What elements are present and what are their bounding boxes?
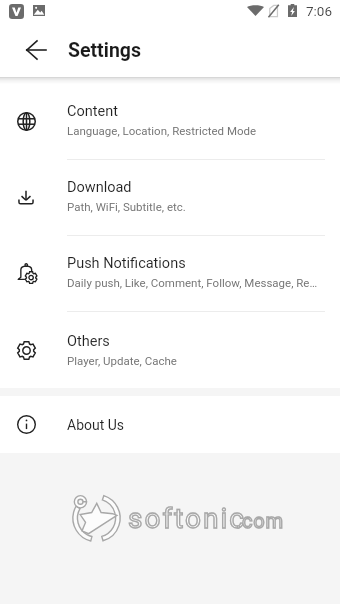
staticText: Language, Location, Restricted Mode bbox=[67, 124, 257, 137]
staticText: softonic bbox=[128, 502, 246, 535]
staticText: .com bbox=[236, 509, 284, 532]
button[interactable]: Back bbox=[0, 24, 68, 77]
staticText: Others bbox=[67, 333, 110, 350]
staticText: .com bbox=[236, 509, 284, 532]
staticText: 7:06 bbox=[306, 3, 333, 19]
staticText: Daily push, Like, Comment, Follow, Messa… bbox=[67, 276, 321, 289]
button[interactable]: Others bbox=[0, 312, 340, 388]
button[interactable]: Download bbox=[0, 160, 340, 235]
button[interactable]: Content bbox=[0, 84, 340, 159]
staticText: Path, WiFi, Subtitle, etc. bbox=[67, 200, 186, 213]
staticText: Player, Update, Cache bbox=[67, 354, 177, 367]
staticText: About Us bbox=[67, 417, 125, 433]
button[interactable]: Push Notifications bbox=[0, 236, 340, 311]
button[interactable]: About Us bbox=[0, 396, 340, 453]
staticText: softonic bbox=[128, 502, 246, 535]
staticText: Push Notifications bbox=[67, 255, 186, 272]
staticText: Content bbox=[67, 103, 118, 120]
staticText: Settings bbox=[68, 39, 141, 62]
staticText: Download bbox=[67, 179, 132, 196]
